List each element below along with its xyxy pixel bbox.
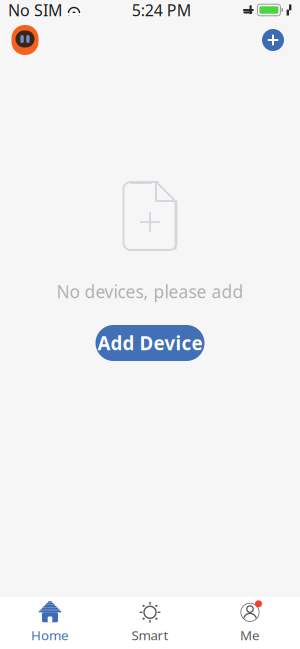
staticText: 5:24 PM <box>132 0 192 21</box>
button[interactable]: Home <box>0 596 100 649</box>
staticText: No devices, please add <box>56 280 243 303</box>
button[interactable]: Me <box>200 596 300 649</box>
staticText: Smart <box>131 626 168 644</box>
staticText: Home <box>31 626 69 644</box>
staticText: Add Device <box>97 331 202 355</box>
button[interactable]: Smart <box>100 596 200 649</box>
button[interactable]: Add Device <box>95 325 204 361</box>
staticText: Me <box>240 626 260 644</box>
staticText: No SIM <box>8 0 63 21</box>
button[interactable]: Profile assistant <box>0 20 40 60</box>
button[interactable]: Add <box>258 22 300 58</box>
